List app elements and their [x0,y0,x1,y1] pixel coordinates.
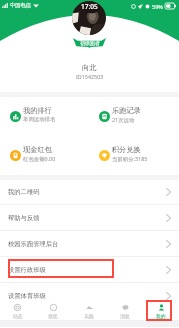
staticText: 向北 [82,63,97,72]
staticText: 帮助与反馈 [8,214,40,222]
button[interactable]: 我的二维码 [0,179,179,205]
button[interactable]: 现金红包 [0,136,89,175]
staticText: 积分兑换 [112,145,141,154]
button[interactable]: 动态 [0,302,35,320]
staticText: ID1542503 [76,73,104,80]
staticText: 本周运动排名 [23,116,56,123]
staticText: 消息 [120,313,130,319]
staticText: 校园乐跑管理后台 [8,240,59,248]
staticText: 红包金额0.00 [23,155,56,162]
staticText: 乐跑 [84,313,94,319]
staticText: 我的二维码 [8,188,40,196]
staticText: 设置体育班级 [8,292,46,300]
button[interactable]: 设置体育班级 [0,283,179,309]
button[interactable]: 校园乐跑管理后台 [0,231,179,257]
staticText: 17:05 [81,2,98,11]
button[interactable]: 乐跑记录 [89,97,179,136]
button[interactable]: 我的 [143,302,179,320]
staticText: 初级跑者 [80,40,100,46]
staticText: 21次运动 [112,116,135,123]
staticText: 中国电信 [10,2,31,9]
button[interactable]: 消息 [107,302,143,320]
button[interactable]: 发现 [35,302,71,320]
button[interactable]: 设置行政班级 [0,257,179,283]
staticText: 59% [152,3,163,10]
button[interactable]: 帮助与反馈 [0,205,179,231]
staticText: 现金红包 [23,145,52,154]
button[interactable]: 我的排行 [0,97,89,136]
staticText: 动态 [13,313,23,319]
button[interactable]: 乐跑 [71,302,107,320]
staticText: 我的排行 [23,106,52,115]
button[interactable]: 积分兑换 [89,136,179,175]
staticText: 我的 [156,313,166,319]
staticText: 乐跑记录 [112,106,141,115]
staticText: 发现 [48,313,58,319]
staticText: 设置行政班级 [8,266,46,274]
staticText: 当前积分:3185 [112,155,148,162]
